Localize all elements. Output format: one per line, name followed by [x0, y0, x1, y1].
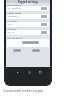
button[interactable]: Recents [39, 71, 42, 74]
staticText: Mac address [7, 3, 22, 6]
button[interactable]: Back [16, 71, 19, 74]
button[interactable]: Keypad 01 [7, 14, 49, 19]
staticText: Channel [7, 27, 17, 30]
button[interactable]: Ch 12 [7, 30, 49, 35]
staticText: Select key file [24, 41, 38, 44]
button[interactable]: Save [13, 49, 21, 52]
button[interactable]: Reset [32, 49, 40, 52]
staticText: Reset [33, 49, 39, 52]
button[interactable]: Select key file [22, 41, 39, 44]
staticText: Pin code [7, 19, 17, 22]
staticText: Device name [7, 11, 22, 14]
staticText: Save [15, 49, 20, 52]
staticText: Ch 12 [8, 31, 41, 34]
staticText: Connectable mobile keypad [3, 89, 44, 93]
button[interactable]: 0A:1B:2C:3D [7, 6, 49, 11]
button[interactable]: Home [28, 71, 31, 74]
staticText: ••••• [8, 23, 41, 26]
staticText: Keypad 01 [8, 15, 41, 18]
staticText: Key file name [7, 36, 23, 39]
button[interactable]: ••••• [7, 22, 49, 27]
staticText: 0A:1B:2C:3D [8, 7, 41, 10]
staticText: Keypad settings [18, 0, 38, 3]
